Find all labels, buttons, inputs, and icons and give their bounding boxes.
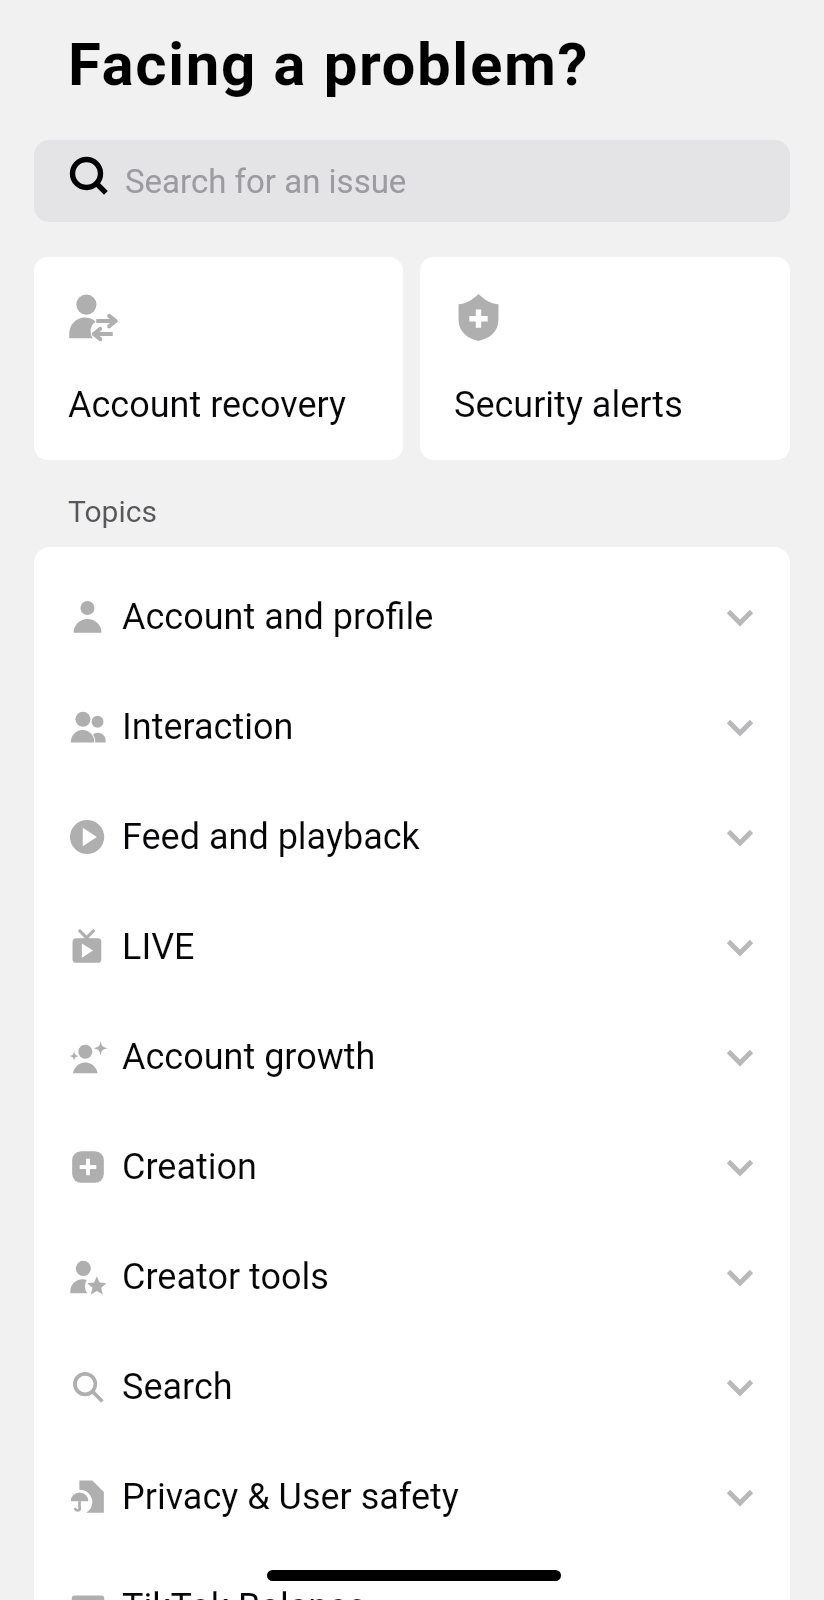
button[interactable]: Security alerts <box>420 257 790 460</box>
staticText: Security alerts <box>454 384 683 426</box>
staticText: Creator tools <box>122 1256 329 1298</box>
staticText: Search <box>122 1366 233 1408</box>
other: Expand Interaction <box>720 707 760 747</box>
staticText: Creation <box>122 1146 257 1188</box>
staticText: Search for an issue <box>125 162 407 201</box>
staticText: Account and profile <box>122 596 434 638</box>
other: Expand Feed and playback <box>720 817 760 857</box>
staticText: Facing a problem? <box>68 29 589 99</box>
staticText: LIVE <box>122 926 195 968</box>
other: Expand Creator tools <box>720 1257 760 1297</box>
button[interactable]: Privacy & User safety <box>34 1442 790 1552</box>
staticText: Interaction <box>122 706 294 748</box>
staticText: Topics <box>68 494 157 529</box>
other: Expand Account and profile <box>720 597 760 637</box>
staticText: Feed and playback <box>122 816 420 858</box>
button[interactable]: Account growth <box>34 1002 790 1112</box>
other: Expand Privacy & User safety <box>720 1477 760 1517</box>
button[interactable]: Search <box>34 140 790 222</box>
button[interactable]: Account and profile <box>34 562 790 672</box>
other: Expand Creation <box>720 1147 760 1187</box>
button[interactable]: Creator tools <box>34 1222 790 1332</box>
button[interactable]: Search <box>34 1332 790 1442</box>
staticText: Privacy & User safety <box>122 1476 459 1518</box>
button[interactable]: TikTok Balance <box>34 1552 790 1600</box>
other: Expand LIVE <box>720 927 760 967</box>
button[interactable]: Interaction <box>34 672 790 782</box>
button[interactable]: LIVE <box>34 892 790 1002</box>
staticText: Account growth <box>122 1036 376 1078</box>
other: Search <box>69 157 109 197</box>
button[interactable]: Creation <box>34 1112 790 1222</box>
staticText: TikTok Balance <box>122 1586 367 1600</box>
button[interactable]: Account recovery <box>34 257 403 460</box>
other: Expand Account growth <box>720 1037 760 1077</box>
button[interactable]: Feed and playback <box>34 782 790 892</box>
staticText: Account recovery <box>68 384 347 426</box>
other: Expand Search <box>720 1367 760 1407</box>
